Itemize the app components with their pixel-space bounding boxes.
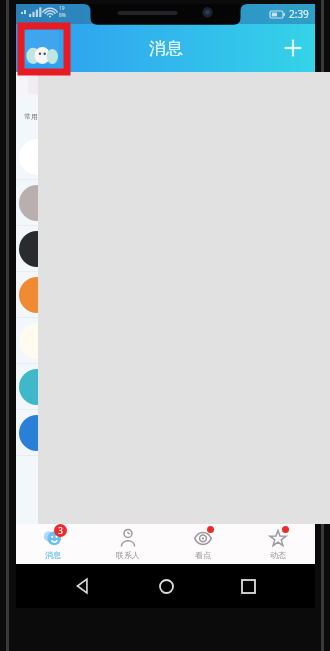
button[interactable]: Back <box>68 571 98 601</box>
staticText: 19 8% <box>59 5 67 18</box>
staticText: 常用 <box>24 112 38 121</box>
staticText: 联系人 <box>116 550 140 560</box>
button[interactable] <box>16 134 315 179</box>
button[interactable] <box>16 410 315 455</box>
button[interactable] <box>16 180 315 225</box>
button[interactable] <box>16 226 315 271</box>
button[interactable]: 动态 <box>240 524 315 564</box>
staticText: 消息 <box>45 550 61 560</box>
staticText: 2:39 <box>289 7 309 21</box>
button[interactable] <box>16 272 315 317</box>
staticText: 3 <box>58 525 63 536</box>
staticText: 动态 <box>270 550 286 560</box>
staticText: 消息 <box>149 38 183 59</box>
button[interactable] <box>16 318 315 363</box>
button[interactable]: Add <box>271 26 315 70</box>
button[interactable]: 看点 <box>165 524 240 564</box>
button[interactable]: Home <box>151 571 181 601</box>
button[interactable]: 3 <box>16 524 90 564</box>
staticText: 看点 <box>195 550 211 560</box>
button[interactable]: 搜索 <box>28 76 303 94</box>
button[interactable] <box>16 364 315 409</box>
button[interactable]: 联系人 <box>90 524 165 564</box>
button[interactable]: Profile <box>25 30 59 64</box>
button[interactable]: Recents <box>233 571 263 601</box>
